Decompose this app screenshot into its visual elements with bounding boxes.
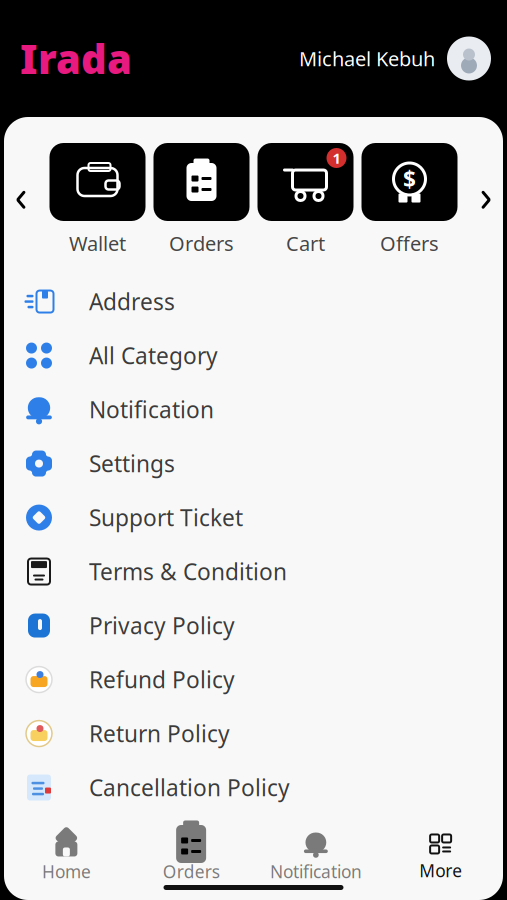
staticText: Orders <box>163 860 220 883</box>
staticText: Cart <box>286 230 325 257</box>
button[interactable]: Next <box>477 187 495 213</box>
staticText: Privacy Policy <box>89 610 235 641</box>
staticText: Refund Policy <box>89 664 235 695</box>
staticText: Offers <box>380 230 439 257</box>
staticText: Support Ticket <box>89 502 243 533</box>
button[interactable]: Address <box>4 275 503 329</box>
staticText: All Category <box>89 340 218 371</box>
staticText: $ <box>403 164 416 194</box>
button[interactable]: Support Ticket <box>4 491 503 545</box>
staticText: Home <box>42 860 91 883</box>
button[interactable]: Previous <box>12 187 30 213</box>
button[interactable]: Notification <box>4 383 503 437</box>
button[interactable]: Cancellation Policy <box>4 761 503 815</box>
button[interactable]: Settings <box>4 437 503 491</box>
button[interactable]: Orders <box>149 143 253 257</box>
staticText: Notification <box>89 394 214 425</box>
staticText: Terms & Condition <box>89 556 287 587</box>
button[interactable]: $ <box>357 143 461 257</box>
button[interactable]: Return Policy <box>4 707 503 761</box>
staticText: Wallet <box>69 230 126 257</box>
button[interactable]: 1 <box>253 143 357 257</box>
staticText: Return Policy <box>89 718 230 749</box>
button[interactable]: Privacy Policy <box>4 599 503 653</box>
button[interactable]: Wallet <box>45 143 149 257</box>
button[interactable]: Notification <box>253 825 378 889</box>
staticText: 1 <box>332 148 340 168</box>
staticText: Notification <box>270 860 362 883</box>
staticText: More <box>419 859 462 882</box>
staticText: Michael Kebuh <box>299 45 435 72</box>
button[interactable]: All Category <box>4 329 503 383</box>
button[interactable]: Orders <box>129 825 254 889</box>
staticText: Address <box>89 286 175 317</box>
button[interactable]: Refund Policy <box>4 653 503 707</box>
staticText: Settings <box>89 448 175 479</box>
button[interactable]: Terms & Condition <box>4 545 503 599</box>
staticText: Irada <box>20 32 132 85</box>
button[interactable]: More <box>378 826 503 888</box>
staticText: Orders <box>169 230 234 257</box>
button[interactable]: Michael Kebuh <box>299 36 507 80</box>
button[interactable]: Home <box>4 825 129 889</box>
staticText: Cancellation Policy <box>89 772 290 803</box>
